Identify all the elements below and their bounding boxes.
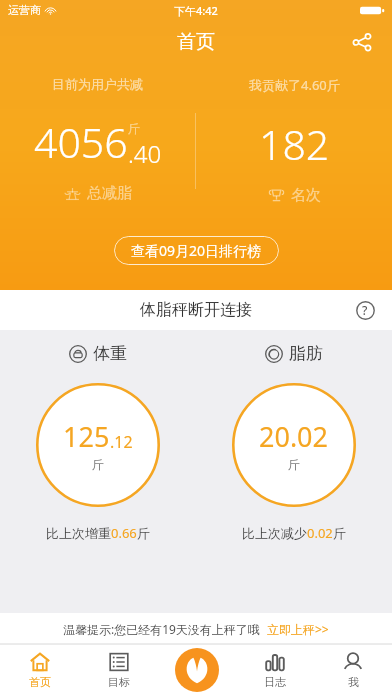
button[interactable]: 首页 [0,644,79,696]
staticText: 182 [259,116,330,172]
staticText: 目标 [108,675,130,689]
staticText: 查看09月20日排行榜 [131,241,262,260]
button[interactable]: 温馨提示:您已经有19天没有上秤了哦 [0,613,392,644]
button[interactable]: Help [350,295,380,325]
staticText: 比上次增重0.66斤 [46,524,150,542]
staticText: 下午4:42 [174,3,218,18]
staticText: 日志 [264,675,286,689]
staticText: 我 [348,675,359,689]
staticText: .40 [128,137,162,170]
staticText: 斤 [128,121,140,136]
staticText: 体重 [93,343,127,364]
button[interactable]: Scan [158,644,236,696]
button[interactable]: 体重 [0,343,196,542]
staticText: 首页 [177,30,215,54]
staticText: 体脂秤断开连接 [140,300,252,320]
button[interactable]: Share [342,22,382,62]
button[interactable]: 查看09月20日排行榜 [114,236,279,265]
button[interactable]: 日志 [236,644,314,696]
staticText: 运营商 [8,3,41,17]
staticText: 总减脂 [87,184,132,203]
staticText: 斤 [288,457,300,472]
staticText: 目前为用户共减 [52,76,143,92]
button[interactable]: 我 [314,644,392,696]
staticText: 比上次减少0.02斤 [242,524,346,542]
staticText: ? [362,302,368,318]
button[interactable]: 目标 [79,644,158,696]
staticText: 125 [63,418,110,455]
button[interactable]: 体脂秤断开连接 [0,290,392,330]
button[interactable]: 脂肪 [196,343,392,542]
staticText: 脂肪 [289,343,323,364]
staticText: 我贡献了4.60斤 [249,76,340,94]
staticText: 4056 [34,114,128,170]
staticText: 20.02 [259,418,329,455]
staticText: 立即上秤>> [267,621,329,637]
staticText: 首页 [29,675,51,689]
staticText: 斤 [92,457,104,472]
staticText: .12 [110,431,133,453]
staticText: 名次 [291,186,321,205]
staticText: 温馨提示:您已经有19天没有上秤了哦 [63,621,260,637]
